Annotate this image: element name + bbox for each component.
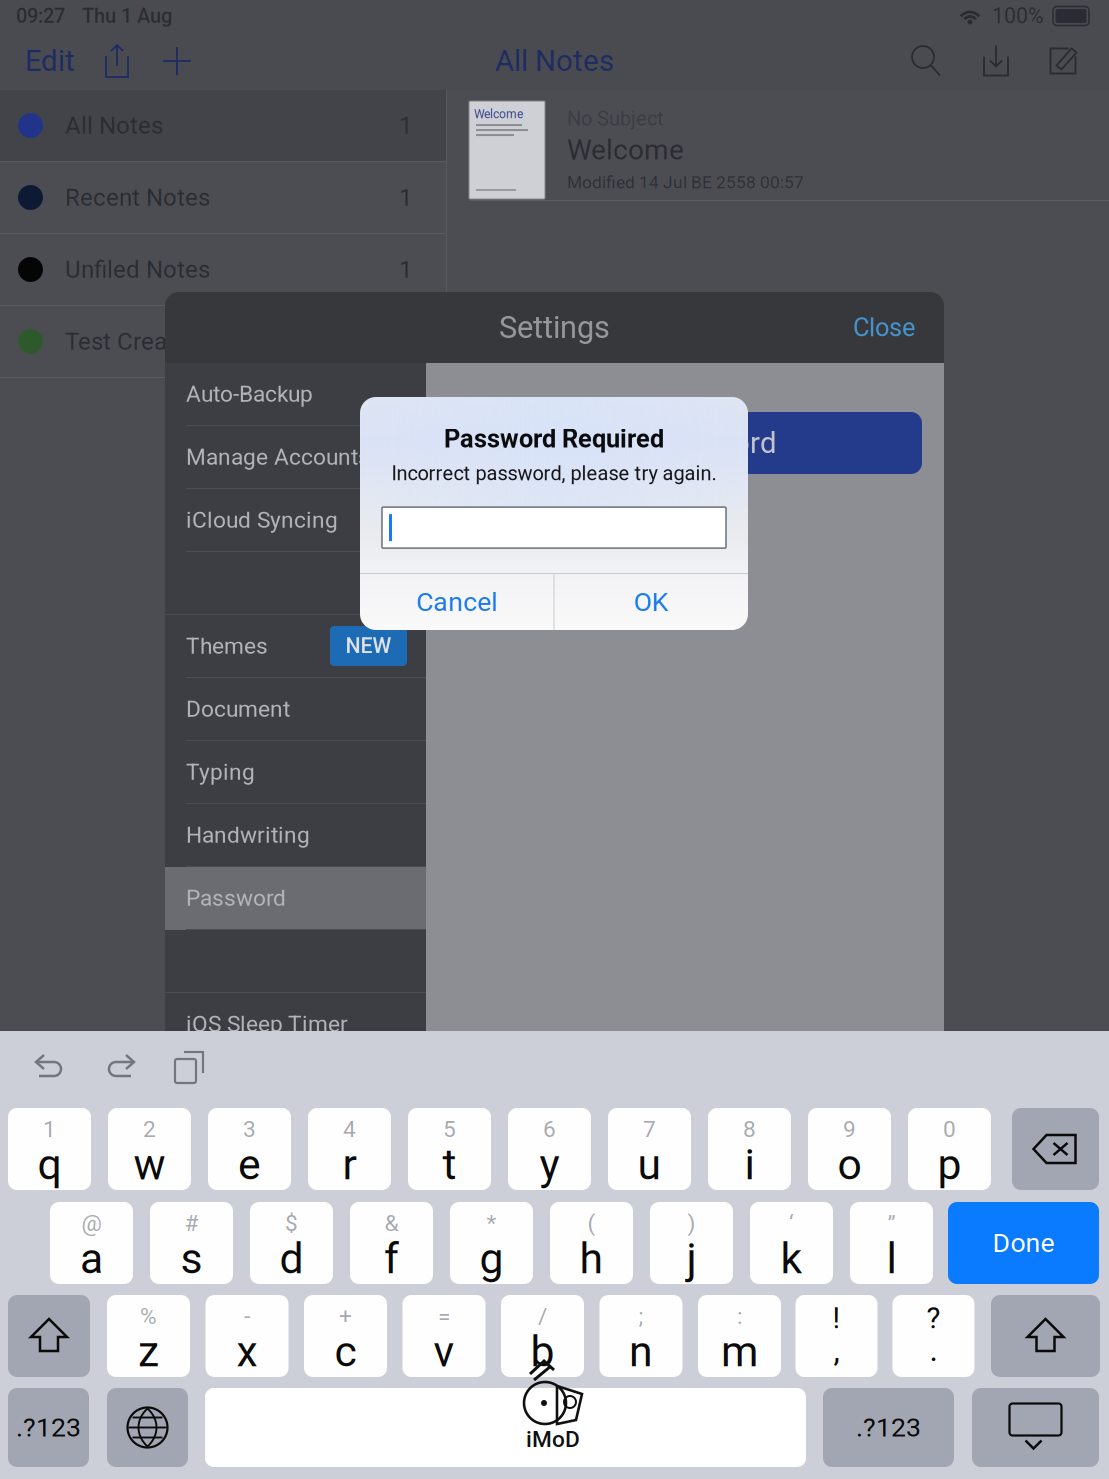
button[interactable]: 7 — [608, 1108, 691, 1190]
button[interactable]: 8 — [708, 1108, 791, 1190]
button[interactable]: Edit — [12, 32, 88, 90]
staticText: .?123 — [856, 1412, 921, 1443]
staticText: v — [433, 1327, 454, 1377]
button[interactable]: & — [350, 1202, 433, 1284]
button[interactable]: ( — [550, 1202, 633, 1284]
button[interactable]: Set Password — [452, 412, 922, 474]
staticText: 4 — [343, 1116, 356, 1143]
staticText: 3 — [243, 1116, 256, 1143]
button[interactable]: Test Created — [0, 306, 446, 378]
button[interactable]: ) — [650, 1202, 733, 1284]
button[interactable]: iOS Sleep Timer — [165, 993, 426, 1056]
button[interactable]: Share — [88, 32, 146, 90]
button[interactable]: ” — [850, 1202, 933, 1284]
staticText: Set Password — [597, 426, 777, 460]
staticText: 5 — [443, 1116, 456, 1143]
button[interactable]: Done — [948, 1202, 1099, 1284]
button[interactable]: Welcome — [447, 90, 1109, 201]
button[interactable]: ! — [795, 1295, 877, 1377]
button[interactable]: 0 — [908, 1108, 991, 1190]
staticText: , — [833, 1331, 839, 1369]
button[interactable]: All Notes — [0, 90, 446, 162]
staticText: 1 — [399, 111, 412, 139]
staticText: p — [937, 1140, 961, 1190]
button[interactable]: Unfiled Notes — [0, 234, 446, 306]
button[interactable]: Hide keyboard — [972, 1388, 1099, 1467]
staticText: b — [530, 1327, 554, 1377]
button[interactable]: New note — [146, 32, 208, 90]
button[interactable]: Handwriting — [165, 804, 426, 867]
button[interactable]: Document — [165, 678, 426, 741]
staticText: Welcome — [567, 133, 684, 166]
button[interactable]: Auto-Backup — [165, 363, 426, 426]
staticText: ( — [587, 1210, 595, 1237]
button[interactable]: Compose — [1031, 32, 1095, 90]
button[interactable]: Delete — [1012, 1108, 1099, 1190]
button[interactable]: - — [205, 1295, 288, 1377]
button[interactable]: Paste — [155, 1040, 225, 1094]
staticText: No Subject — [567, 107, 664, 130]
button[interactable]: 1 — [8, 1108, 91, 1190]
staticText: f — [384, 1234, 399, 1284]
button[interactable]: @ — [50, 1202, 133, 1284]
staticText: $ — [285, 1210, 298, 1237]
button[interactable]: Themes — [165, 615, 426, 678]
staticText: q — [37, 1140, 61, 1190]
staticText: z — [138, 1327, 159, 1377]
button[interactable]: Import — [961, 32, 1031, 90]
staticText: iCloud Syncing — [186, 507, 338, 533]
staticText: h — [579, 1234, 603, 1284]
button[interactable]: / — [501, 1295, 584, 1377]
button[interactable]: Manage Accounts — [165, 426, 426, 489]
staticText: iOS Sleep Timer — [186, 1011, 348, 1037]
button[interactable]: : — [698, 1295, 781, 1377]
button[interactable]: ; — [599, 1295, 682, 1377]
button[interactable]: Search — [891, 32, 961, 90]
button[interactable]: Cancel — [360, 574, 553, 630]
button[interactable]: iCloud Syncing — [165, 489, 426, 552]
staticText: 100% — [992, 3, 1044, 28]
button[interactable]: 6 — [508, 1108, 591, 1190]
button[interactable]: ? — [892, 1295, 974, 1377]
staticText: ‘ — [789, 1210, 794, 1237]
button[interactable]: .?123 — [823, 1388, 954, 1467]
button[interactable]: OK — [554, 574, 748, 630]
button[interactable]: Typing — [165, 741, 426, 804]
button[interactable]: 4 — [308, 1108, 391, 1190]
staticText: n — [629, 1327, 653, 1377]
staticText: All Notes — [495, 44, 614, 78]
staticText: Password Required — [444, 424, 664, 454]
button[interactable]: Undo — [15, 1040, 85, 1094]
button[interactable]: 5 — [408, 1108, 491, 1190]
button[interactable]: Shift — [8, 1295, 90, 1377]
button[interactable]: 9 — [808, 1108, 891, 1190]
button[interactable]: 3 — [208, 1108, 291, 1190]
button[interactable]: $ — [250, 1202, 333, 1284]
button[interactable]: Recent Notes — [0, 162, 446, 234]
button[interactable]: # — [150, 1202, 233, 1284]
button[interactable]: Redo — [85, 1040, 155, 1094]
button[interactable]: Password — [165, 867, 426, 930]
button[interactable]: Close — [853, 297, 944, 358]
staticText: Themes — [186, 633, 268, 659]
button[interactable]: Space — [205, 1388, 806, 1467]
button[interactable]: 2 — [108, 1108, 191, 1190]
button[interactable]: % — [107, 1295, 190, 1377]
button[interactable]: = — [402, 1295, 485, 1377]
button[interactable]: ‘ — [750, 1202, 833, 1284]
staticText: m — [721, 1327, 758, 1377]
staticText: ; — [638, 1303, 643, 1330]
staticText: NEW — [345, 633, 391, 658]
button[interactable]: .?123 — [8, 1388, 89, 1467]
staticText: Modified 14 Jul BE 2558 00:57 — [567, 172, 804, 192]
button[interactable]: Switch keyboard — [107, 1388, 188, 1467]
button[interactable]: * — [450, 1202, 533, 1284]
staticText: ) — [687, 1210, 695, 1237]
staticText: 09:27 — [16, 4, 65, 28]
staticText: Handwriting — [186, 822, 310, 848]
staticText: e — [238, 1140, 261, 1190]
button[interactable]: + — [304, 1295, 387, 1377]
button[interactable]: Shift — [991, 1295, 1100, 1377]
staticText: Cancel — [416, 586, 497, 618]
staticText: % — [140, 1303, 157, 1330]
